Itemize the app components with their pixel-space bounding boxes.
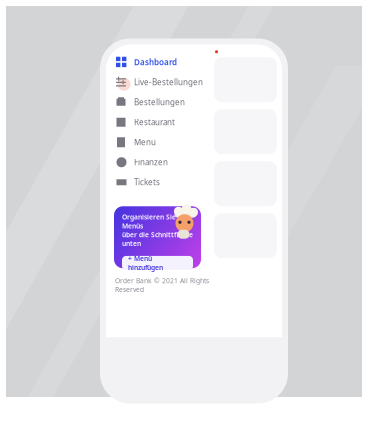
button[interactable]: Menü (106, 132, 209, 152)
button[interactable]: Tickets (106, 172, 209, 192)
button[interactable]: Restaurant (106, 112, 209, 132)
button[interactable]: Dashboard (106, 52, 209, 72)
staticText: Finanzen (134, 157, 168, 167)
staticText: Tickets (134, 177, 160, 187)
button[interactable]: Benachrichtigungen (238, 28, 253, 43)
button[interactable]: Live-Bestellungen (106, 72, 209, 92)
button[interactable]: Expand (218, 28, 233, 43)
staticText: Live-Bestellungen (134, 77, 203, 87)
staticText: über die Schnittfläche unten (122, 230, 193, 248)
staticText: Menü (134, 137, 156, 147)
staticText: Bestellungen (134, 97, 185, 107)
staticText: + Menü hinzufügen (128, 254, 163, 272)
button[interactable]: Profil (258, 26, 276, 44)
staticText: Order Bank © 2021 All Rights Reserved (115, 276, 209, 294)
staticText: Organisieren Sie Ihre Menüs (122, 212, 191, 230)
button[interactable]: + Menü hinzufügen (122, 256, 193, 270)
button[interactable]: Bestellungen (106, 92, 209, 112)
staticText: Dashboard (134, 57, 177, 67)
staticText: Restaurant (134, 117, 175, 127)
staticText: 00:52 (180, 0, 207, 8)
button[interactable]: Finanzen (106, 152, 209, 172)
